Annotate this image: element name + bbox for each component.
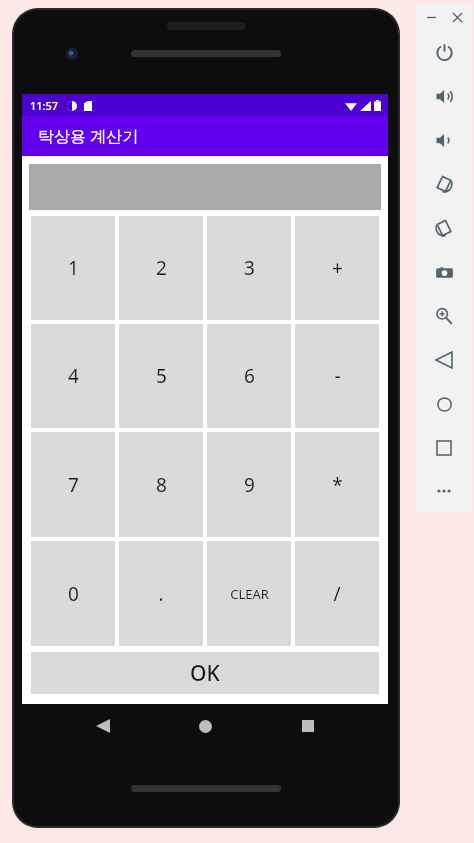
staticText: 1	[68, 255, 79, 281]
button[interactable]: 8	[119, 432, 203, 537]
staticText: 3	[244, 255, 255, 281]
button[interactable]: Volume down	[416, 118, 472, 162]
button[interactable]: 7	[31, 432, 115, 537]
button[interactable]: Recent apps	[286, 704, 330, 748]
button[interactable]: -	[295, 324, 379, 428]
staticText: 4	[68, 363, 79, 389]
button[interactable]: CLEAR	[207, 541, 291, 646]
button[interactable]: Zoom	[416, 294, 472, 338]
button[interactable]: 0	[31, 541, 115, 646]
button[interactable]: .	[119, 541, 203, 646]
button[interactable]: Power	[416, 30, 472, 74]
button[interactable]: Minimize	[421, 7, 441, 27]
staticText: +	[332, 255, 343, 281]
button[interactable]: Close	[447, 7, 467, 27]
button[interactable]: Back	[81, 704, 125, 748]
button[interactable]: Home	[416, 382, 472, 426]
staticText: *	[332, 472, 343, 498]
staticText: 9	[244, 472, 255, 498]
staticText: 11:57	[30, 98, 59, 113]
button[interactable]: +	[295, 216, 379, 320]
button[interactable]: 9	[207, 432, 291, 537]
staticText: 2	[156, 255, 167, 281]
button[interactable]: 6	[207, 324, 291, 428]
staticText: CLEAR	[230, 585, 269, 603]
staticText: 탁상용 계산기	[38, 125, 139, 147]
button[interactable]: Overview	[416, 426, 472, 470]
button[interactable]: Rotate left	[416, 162, 472, 206]
button[interactable]: Take screenshot	[416, 250, 472, 294]
button[interactable]: Rotate right	[416, 206, 472, 250]
button[interactable]: More	[416, 470, 472, 512]
button[interactable]: Back	[416, 338, 472, 382]
staticText: OK	[190, 659, 220, 688]
staticText: 6	[244, 363, 255, 389]
button[interactable]: 2	[119, 216, 203, 320]
button[interactable]: 1	[31, 216, 115, 320]
button[interactable]: 5	[119, 324, 203, 428]
staticText: .	[158, 581, 164, 607]
button[interactable]: /	[295, 541, 379, 646]
button[interactable]: Home	[183, 704, 227, 748]
staticText: 0	[68, 581, 79, 607]
button[interactable]: OK	[31, 652, 379, 694]
staticText: 5	[156, 363, 167, 389]
staticText: 7	[68, 472, 79, 498]
staticText: /	[333, 581, 341, 607]
staticText: 8	[156, 472, 167, 498]
staticText: -	[334, 363, 341, 389]
button[interactable]: 4	[31, 324, 115, 428]
button[interactable]: *	[295, 432, 379, 537]
button[interactable]: Volume up	[416, 74, 472, 118]
button[interactable]: 3	[207, 216, 291, 320]
